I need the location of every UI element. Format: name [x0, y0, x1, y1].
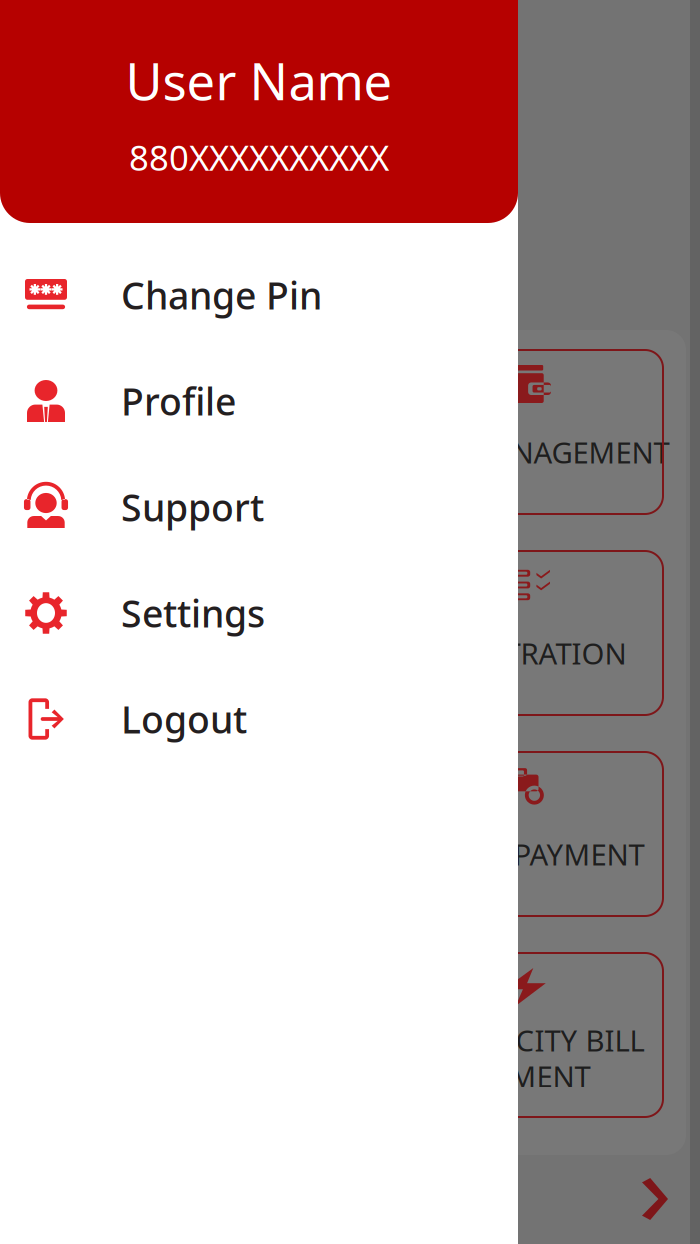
staticText: CARD MANAGEMENT [380, 432, 669, 471]
staticText: Support [121, 482, 264, 532]
staticText: User Name [125, 47, 392, 114]
staticText: 880XXXXXXXXXX [129, 134, 389, 180]
button[interactable]: Change Pin [0, 242, 518, 348]
button[interactable]: Logout [0, 666, 518, 772]
staticText: MOBILE RECHARGE [41, 633, 308, 672]
staticText: Profile [121, 376, 236, 426]
staticText: PAYMENT [459, 1056, 590, 1095]
staticText: Logout [121, 694, 247, 744]
staticText: ELECTRICITY BILL [405, 1020, 644, 1059]
staticText: REGISTRATION [423, 633, 626, 672]
button[interactable]: Profile [0, 348, 518, 454]
staticText: CREDIT PAYMENT [405, 834, 644, 873]
staticText: Settings [121, 588, 265, 638]
staticText: Change Pin [121, 270, 322, 320]
button[interactable]: Support [0, 454, 518, 560]
button[interactable]: Settings [0, 560, 518, 666]
